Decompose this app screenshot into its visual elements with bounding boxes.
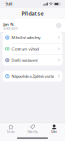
staticText: Zobrazit <box>3 25 17 30</box>
staticText: Účet <box>51 130 57 134</box>
button[interactable]: Další nastavení <box>3 55 62 66</box>
staticText: 9:41 <box>5 1 12 7</box>
staticText: Měsíční odměny <box>11 35 40 40</box>
staticText: Nápověda a Zpětná vazba <box>11 73 54 79</box>
staticText: Centrum výhod <box>11 46 38 51</box>
button[interactable]: Jan N. <box>0 19 65 32</box>
staticText: Domů <box>7 130 15 134</box>
button[interactable]: Nápověda a Zpětná vazba <box>3 71 62 82</box>
staticText: Přidat se <box>21 10 43 17</box>
button[interactable]: Nabídky <box>22 123 43 135</box>
staticText: Jan N. <box>3 22 14 27</box>
staticText: Nabídky <box>27 130 37 134</box>
button[interactable]: Účet <box>43 123 65 135</box>
staticText: Další nastavení <box>11 57 37 63</box>
button[interactable]: Centrum výhod <box>3 43 62 54</box>
button[interactable]: Měsíční odměny <box>3 32 62 43</box>
button[interactable]: Domů <box>0 123 22 135</box>
